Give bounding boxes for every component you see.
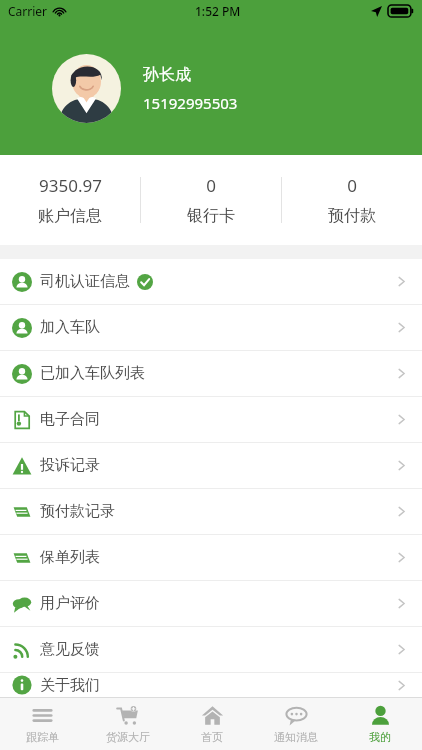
button[interactable]: 跟踪单 [0,698,85,750]
staticText: 首页 [201,730,223,744]
staticText: 0 [347,174,357,197]
staticText: 1:52 PM [195,3,241,19]
staticText: 预付款 [328,206,376,226]
staticText: Carrier [8,3,48,19]
staticText: 保单列表 [40,548,100,567]
button[interactable]: 关于我们 [0,673,422,697]
button[interactable]: 9350.97 [0,155,140,245]
staticText: 意见反馈 [40,640,100,659]
staticText: 15192995503 [143,93,238,113]
button[interactable]: 货源大厅 [85,698,170,750]
button[interactable]: 意见反馈 [0,627,422,672]
staticText: 关于我们 [40,676,100,695]
staticText: 账户信息 [38,206,102,226]
button[interactable]: 电子合同 [0,397,422,442]
staticText: 预付款记录 [40,502,115,521]
staticText: 用户评价 [40,594,100,613]
button[interactable]: 用户评价 [0,581,422,626]
button[interactable]: 我的 [338,698,422,750]
staticText: 投诉记录 [40,456,100,475]
button[interactable]: 通知消息 [254,698,338,750]
staticText: 我的 [369,730,391,744]
staticText: 跟踪单 [26,730,59,744]
staticText: 电子合同 [40,410,100,429]
staticText: 已加入车队列表 [40,364,145,383]
staticText: 货源大厅 [106,730,150,744]
staticText: 加入车队 [40,318,100,337]
button[interactable]: 投诉记录 [0,443,422,488]
staticText: 9350.97 [39,174,102,197]
button[interactable]: 已加入车队列表 [0,351,422,396]
button[interactable] [52,54,121,123]
button[interactable]: 加入车队 [0,305,422,350]
button[interactable]: 0 [141,155,281,245]
staticText: 银行卡 [187,206,235,226]
button[interactable]: 0 [282,155,422,245]
staticText: 司机认证信息 [40,272,130,291]
button[interactable]: 预付款记录 [0,489,422,534]
staticText: 通知消息 [274,730,318,744]
staticText: 0 [206,174,216,197]
button[interactable]: 首页 [170,698,254,750]
staticText: 孙长成 [143,65,191,85]
button[interactable]: 司机认证信息 [0,259,422,304]
button[interactable]: 保单列表 [0,535,422,580]
